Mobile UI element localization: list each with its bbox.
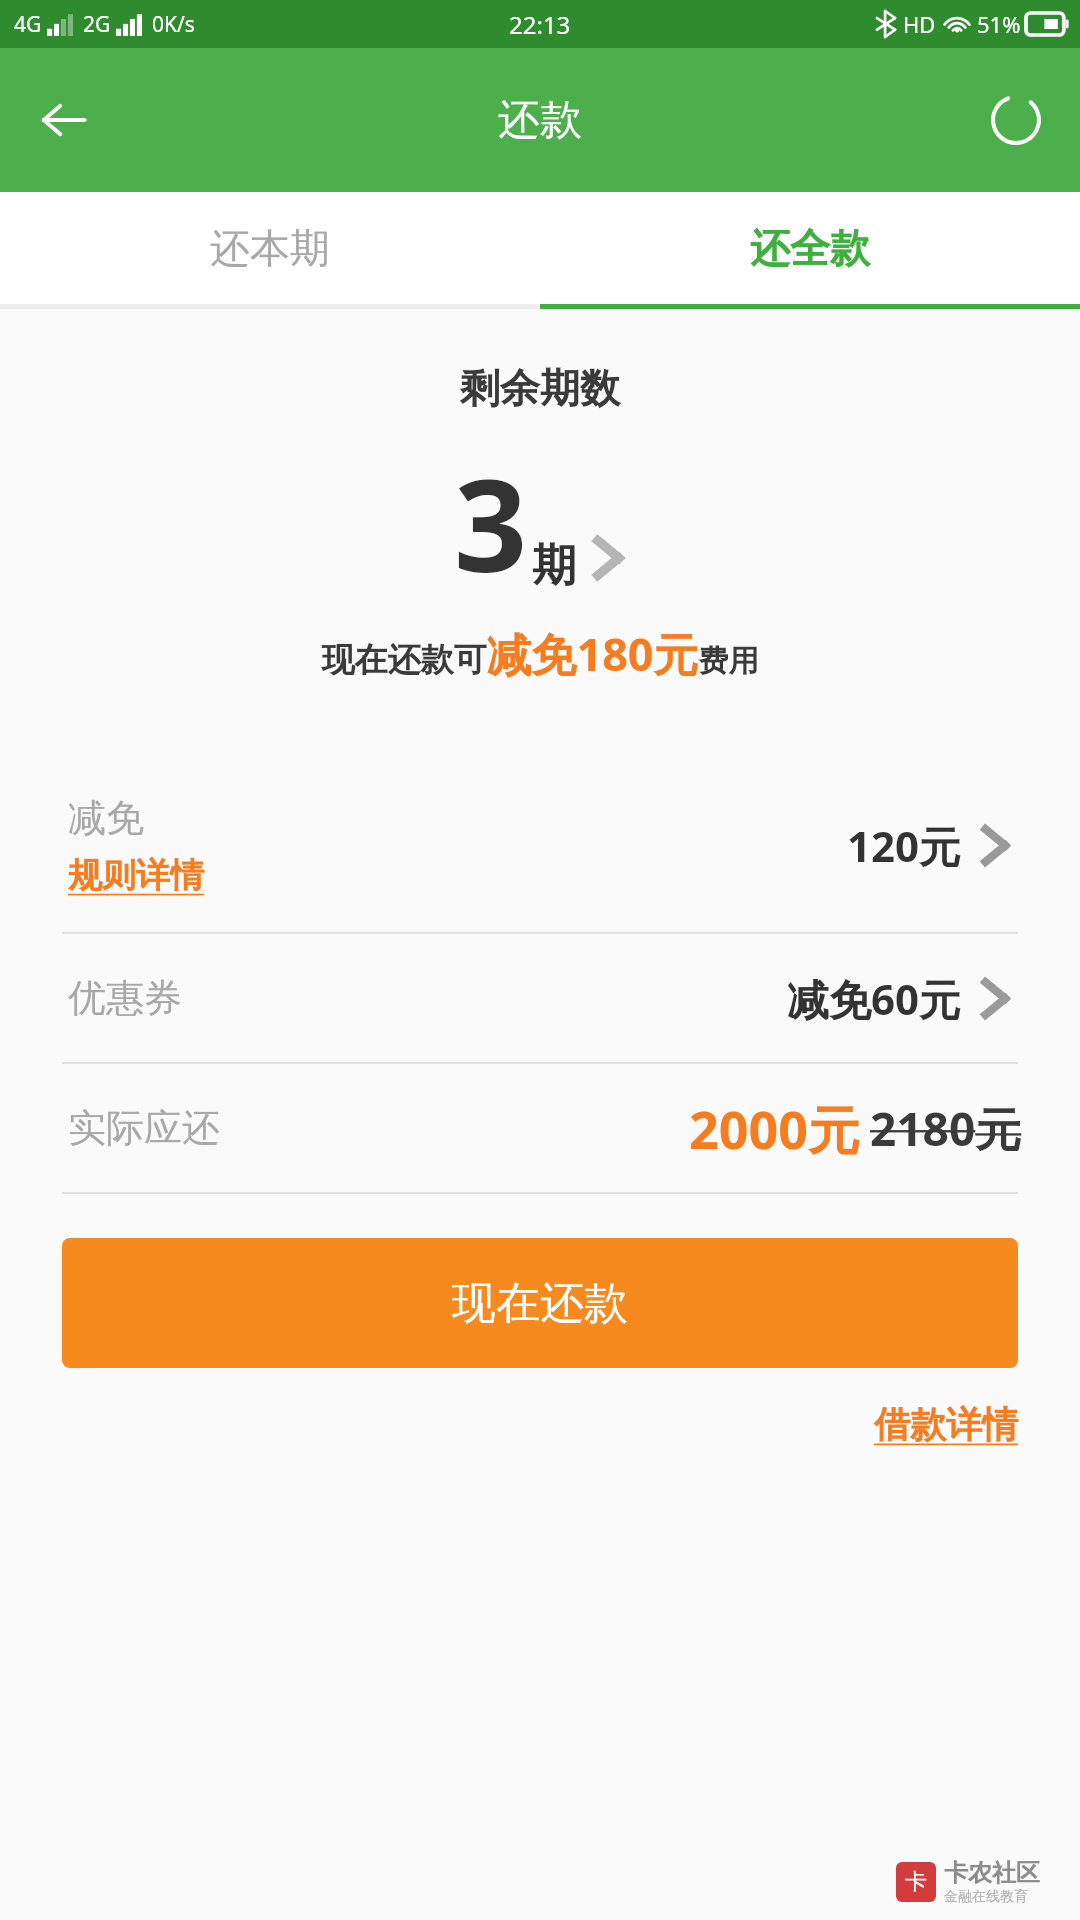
staticText: 规则详情: [68, 854, 204, 897]
staticText: 2000元: [689, 1093, 860, 1164]
staticText: 还款: [498, 94, 582, 147]
button[interactable]: 还本期: [0, 192, 540, 304]
staticText: 卡农社区: [944, 1858, 1040, 1888]
button[interactable]: 优惠券: [0, 934, 1080, 1062]
button[interactable]: 还全款: [540, 192, 1080, 304]
staticText: 实际应还: [68, 1104, 689, 1152]
staticText: 120元: [847, 817, 962, 874]
staticText: 卡: [905, 1868, 927, 1896]
staticText: 减免: [68, 794, 144, 842]
staticText: 0K/s: [152, 10, 195, 39]
staticText: 22:13: [509, 8, 571, 41]
staticText: 优惠券: [68, 974, 787, 1022]
staticText: 现在还款可减免180元费用: [321, 623, 759, 684]
button[interactable]: 借款详情: [874, 1402, 1018, 1447]
button[interactable]: 3: [448, 435, 632, 609]
staticText: 还本期: [210, 223, 330, 273]
button[interactable]: 现在还款: [62, 1238, 1018, 1368]
staticText: HD: [903, 9, 936, 39]
button[interactable]: Back: [22, 78, 106, 162]
staticText: 2G: [83, 10, 111, 39]
staticText: 3: [454, 435, 528, 609]
staticText: 剩余期数: [460, 363, 620, 413]
staticText: 2180元: [870, 1097, 1022, 1160]
button[interactable]: 实际应还: [0, 1064, 1080, 1192]
staticText: 还全款: [750, 223, 870, 273]
staticText: 期: [532, 538, 576, 593]
button[interactable]: Refresh: [974, 78, 1058, 162]
button[interactable]: 减免: [0, 758, 1080, 932]
staticText: 51%: [977, 9, 1021, 39]
staticText: 金融在线教育: [944, 1888, 1028, 1906]
staticText: 减免60元: [787, 970, 962, 1027]
staticText: 4G: [14, 10, 42, 39]
staticText: 现在还款: [452, 1276, 628, 1331]
staticText: 借款详情: [874, 1402, 1018, 1447]
